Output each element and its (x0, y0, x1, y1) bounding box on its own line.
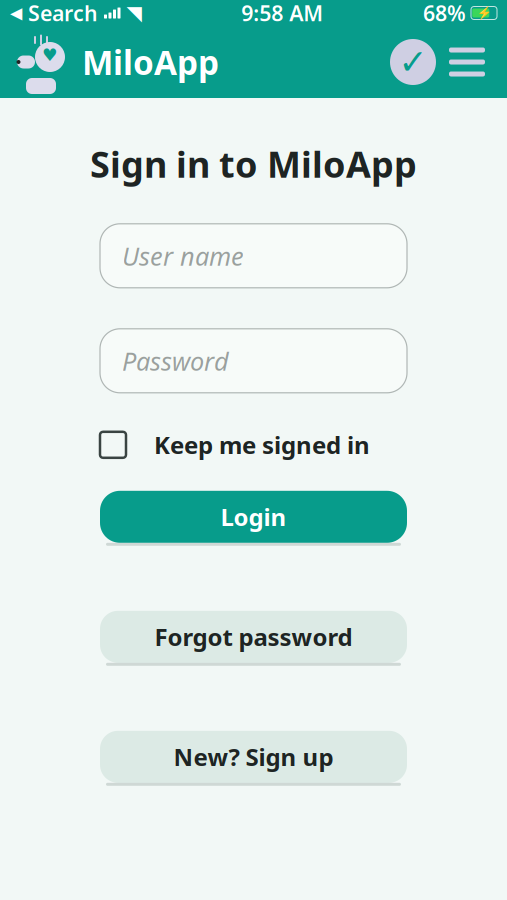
button[interactable]: Confirm (387, 36, 439, 88)
button[interactable]: New? Sign up (100, 731, 407, 783)
button[interactable]: Keep me signed in (0, 428, 507, 462)
staticText: 68% (423, 0, 466, 27)
staticText: Sign in to MiloApp (90, 140, 417, 188)
staticText: New? Sign up (173, 741, 333, 773)
staticText: Keep me signed in (154, 429, 370, 461)
staticText: ✓ (398, 42, 427, 82)
button[interactable]: Forgot password (100, 611, 407, 663)
staticText: ◥ (126, 2, 141, 24)
staticText: ◀ (10, 4, 22, 22)
staticText: Forgot password (154, 621, 352, 653)
staticText: MiloApp (82, 40, 219, 84)
button[interactable]: Menu (439, 36, 495, 88)
staticText: User name (122, 239, 244, 273)
button[interactable]: Login (100, 491, 407, 543)
staticText: ⚡ (476, 6, 491, 20)
staticText: Login (220, 501, 286, 533)
staticText: ♥ (42, 45, 58, 65)
staticText: 9:58 AM (241, 0, 323, 27)
staticText: Password (122, 344, 229, 378)
staticText: Search (22, 0, 98, 27)
